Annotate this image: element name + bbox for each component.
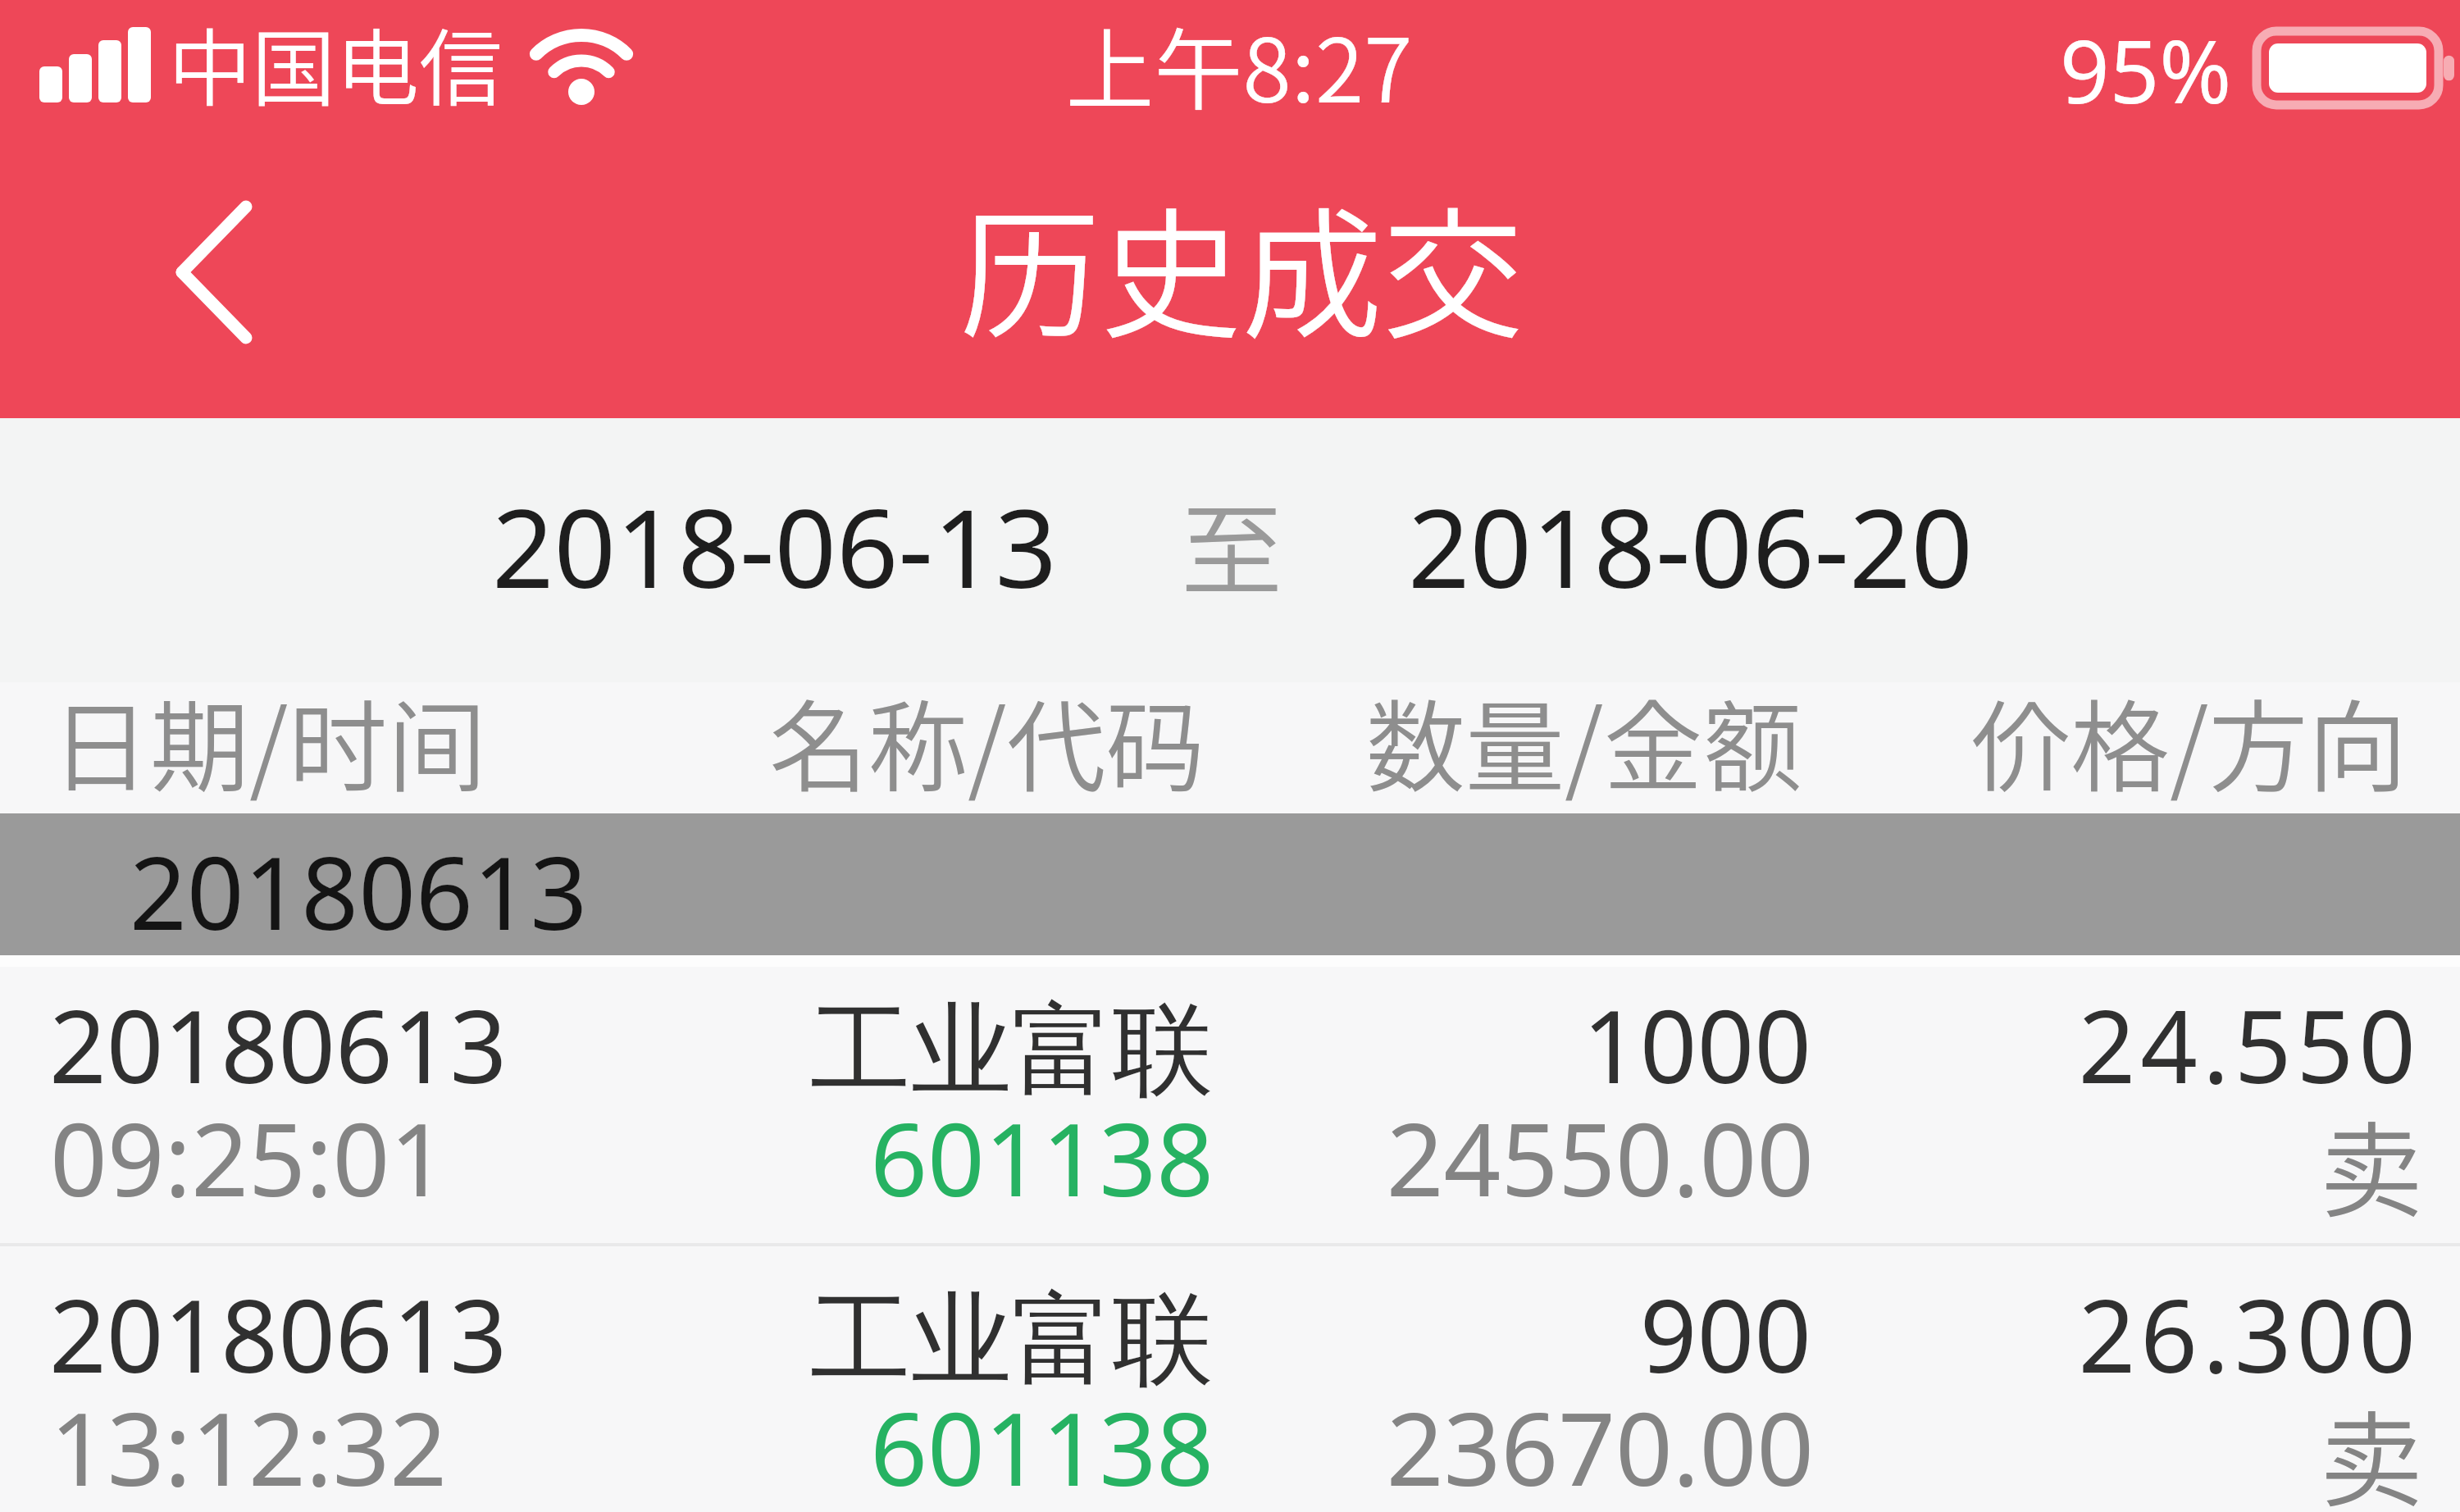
staticText: 24.550 — [1847, 977, 2421, 1113]
staticText: 13:12:32 — [50, 1379, 448, 1512]
staticText: 20180613 — [130, 823, 588, 959]
button[interactable]: Back — [100, 153, 313, 391]
staticText: 95% — [2060, 11, 2232, 129]
staticText: 601138 — [558, 1090, 1214, 1226]
staticText: 价格/方向 — [1971, 668, 2408, 812]
button[interactable]: 20180613 — [0, 1242, 2460, 1512]
staticText: 26.300 — [1847, 1266, 2421, 1402]
staticText: 中国电信 — [168, 2, 503, 124]
staticText: 日期/时间 — [51, 668, 487, 812]
staticText: 数量/金额 — [1366, 668, 1802, 812]
staticText: 历史成交 — [831, 162, 1651, 367]
staticText: 卖 — [1849, 1378, 2423, 1512]
staticText: 2018-06-20 — [1408, 472, 1974, 620]
staticText: 工业富联 — [558, 988, 1214, 1115]
staticText: 601138 — [558, 1379, 1214, 1512]
staticText: 上午8:27 — [1009, 0, 1469, 128]
staticText: 2018-06-13 — [492, 472, 1058, 620]
staticText: 20180613 — [49, 977, 508, 1113]
staticText: 工业富联 — [558, 1277, 1214, 1405]
button[interactable]: 20180613 — [0, 953, 2460, 1240]
staticText: 卖 — [1849, 1089, 2423, 1238]
staticText: 09:25:01 — [50, 1090, 448, 1226]
staticText: 1000 — [1237, 977, 1811, 1113]
staticText: 至 — [1181, 469, 1283, 617]
button[interactable]: 2018-06-13 — [246, 418, 1296, 682]
button[interactable]: 2018-06-20 — [1312, 418, 2460, 682]
staticText: 20180613 — [49, 1266, 508, 1402]
staticText: 23670.00 — [1240, 1379, 1814, 1512]
staticText: 24550.00 — [1240, 1090, 1814, 1226]
staticText: 900 — [1237, 1266, 1811, 1402]
staticText: 名称/代码 — [769, 668, 1205, 812]
